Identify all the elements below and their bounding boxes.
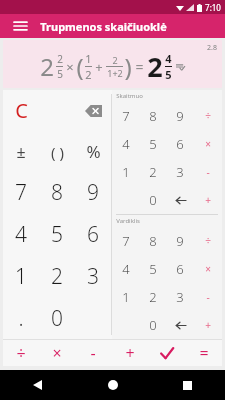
button[interactable]: 7 [112, 101, 139, 130]
staticText: 4 [122, 260, 130, 278]
staticText: 6 [176, 135, 184, 153]
button[interactable]: ÷ [194, 101, 222, 130]
button[interactable]: ( ) [39, 131, 75, 172]
staticText: - [206, 165, 210, 179]
button[interactable]: 7 [112, 226, 139, 255]
staticText: 2 [85, 67, 92, 82]
staticText: 9 [87, 178, 99, 207]
button[interactable]: 4 [3, 213, 39, 255]
button[interactable]: 0 [139, 186, 166, 214]
staticText: 2 [40, 50, 54, 83]
button[interactable]: 5 [39, 213, 75, 255]
staticText: 2.8 [207, 43, 217, 53]
button[interactable]: 5 [139, 130, 166, 158]
button[interactable]: 8 [139, 101, 166, 130]
staticText: 7 [122, 107, 130, 125]
button[interactable]: Recents [150, 370, 225, 400]
staticText: 4 [15, 220, 27, 249]
button[interactable]: 1 [112, 283, 139, 311]
button[interactable]: Menu [6, 14, 34, 38]
button[interactable]: 2 [139, 158, 166, 186]
button[interactable]: 5 [139, 255, 166, 283]
button[interactable]: 6 [75, 213, 111, 255]
staticText: 2 [147, 48, 163, 85]
button[interactable]: Back [0, 370, 75, 400]
button[interactable]: Backspace [166, 311, 194, 339]
button[interactable]: Home [75, 370, 150, 400]
button[interactable]: Backspace [166, 186, 194, 214]
button[interactable]: 0 [139, 311, 166, 339]
staticText: × [52, 342, 62, 364]
staticText: ÷ [205, 234, 211, 248]
button[interactable]: 4 [112, 255, 139, 283]
staticText: = [135, 57, 144, 76]
staticText: + [125, 342, 135, 364]
staticText: 0 [149, 191, 157, 209]
staticText: 7 [122, 232, 130, 250]
button[interactable]: C [3, 90, 39, 131]
button[interactable]: 8 [39, 172, 75, 213]
staticText: ) [124, 50, 132, 83]
staticText: 3 [87, 262, 99, 291]
button[interactable]: × [194, 130, 222, 158]
button[interactable]: 8 [139, 226, 166, 255]
button[interactable]: 3 [75, 255, 111, 297]
staticText: + [205, 318, 211, 332]
button[interactable]: - [75, 340, 111, 366]
button[interactable]: 2.8 [3, 40, 222, 88]
staticText: 5 [51, 220, 63, 249]
button[interactable]: 6 [166, 130, 194, 158]
button[interactable]: 7 [3, 172, 39, 213]
staticText: × [205, 137, 211, 151]
button[interactable]: 0 [39, 297, 75, 339]
staticText: 1 [15, 262, 27, 291]
button[interactable]: ÷ [3, 340, 39, 366]
button[interactable]: 9 [166, 101, 194, 130]
button[interactable]: 1 [112, 158, 139, 186]
staticText: + [95, 58, 103, 76]
staticText: Vardiklis [116, 217, 140, 225]
staticText: 2 [149, 163, 157, 181]
button[interactable]: . [3, 297, 39, 339]
button[interactable]: 9 [166, 226, 194, 255]
button[interactable]: + [111, 340, 148, 366]
staticText: 8 [51, 178, 63, 207]
button[interactable]: Backspace [75, 90, 111, 131]
button[interactable]: + [194, 311, 222, 339]
button[interactable]: - [194, 283, 222, 311]
button[interactable]: % [75, 131, 111, 172]
staticText: 8 [149, 107, 157, 125]
staticText: 4 [165, 51, 172, 66]
button[interactable]: 1 [3, 255, 39, 297]
button[interactable]: × [39, 340, 75, 366]
staticText: 5 [149, 260, 157, 278]
button[interactable]: 4 [112, 130, 139, 158]
staticText: 3 [176, 288, 184, 306]
button[interactable]: 3 [166, 283, 194, 311]
staticText: 4 [122, 135, 130, 153]
button[interactable]: ÷ [194, 226, 222, 255]
button[interactable]: 9 [75, 172, 111, 213]
staticText: 8 [149, 232, 157, 250]
staticText: + [205, 193, 211, 207]
button[interactable]: 2 [39, 255, 75, 297]
button[interactable]: 6 [166, 255, 194, 283]
button[interactable]: ± [3, 131, 39, 172]
staticText: = [199, 342, 209, 364]
staticText: 6 [87, 220, 99, 249]
staticText: × [205, 262, 211, 276]
staticText: 0 [51, 304, 63, 333]
button[interactable]: × [194, 255, 222, 283]
button[interactable]: Apply [148, 340, 185, 366]
staticText: - [90, 342, 96, 364]
button[interactable]: = [185, 340, 222, 366]
staticText: ÷ [205, 109, 211, 123]
button[interactable]: + [194, 186, 222, 214]
staticText: Skaitmuo [116, 92, 143, 100]
staticText: 0 [149, 316, 157, 334]
button[interactable]: - [194, 158, 222, 186]
staticText: 2 [51, 262, 63, 291]
button[interactable]: 2 [139, 283, 166, 311]
staticText: 3 [176, 163, 184, 181]
button[interactable]: 3 [166, 158, 194, 186]
